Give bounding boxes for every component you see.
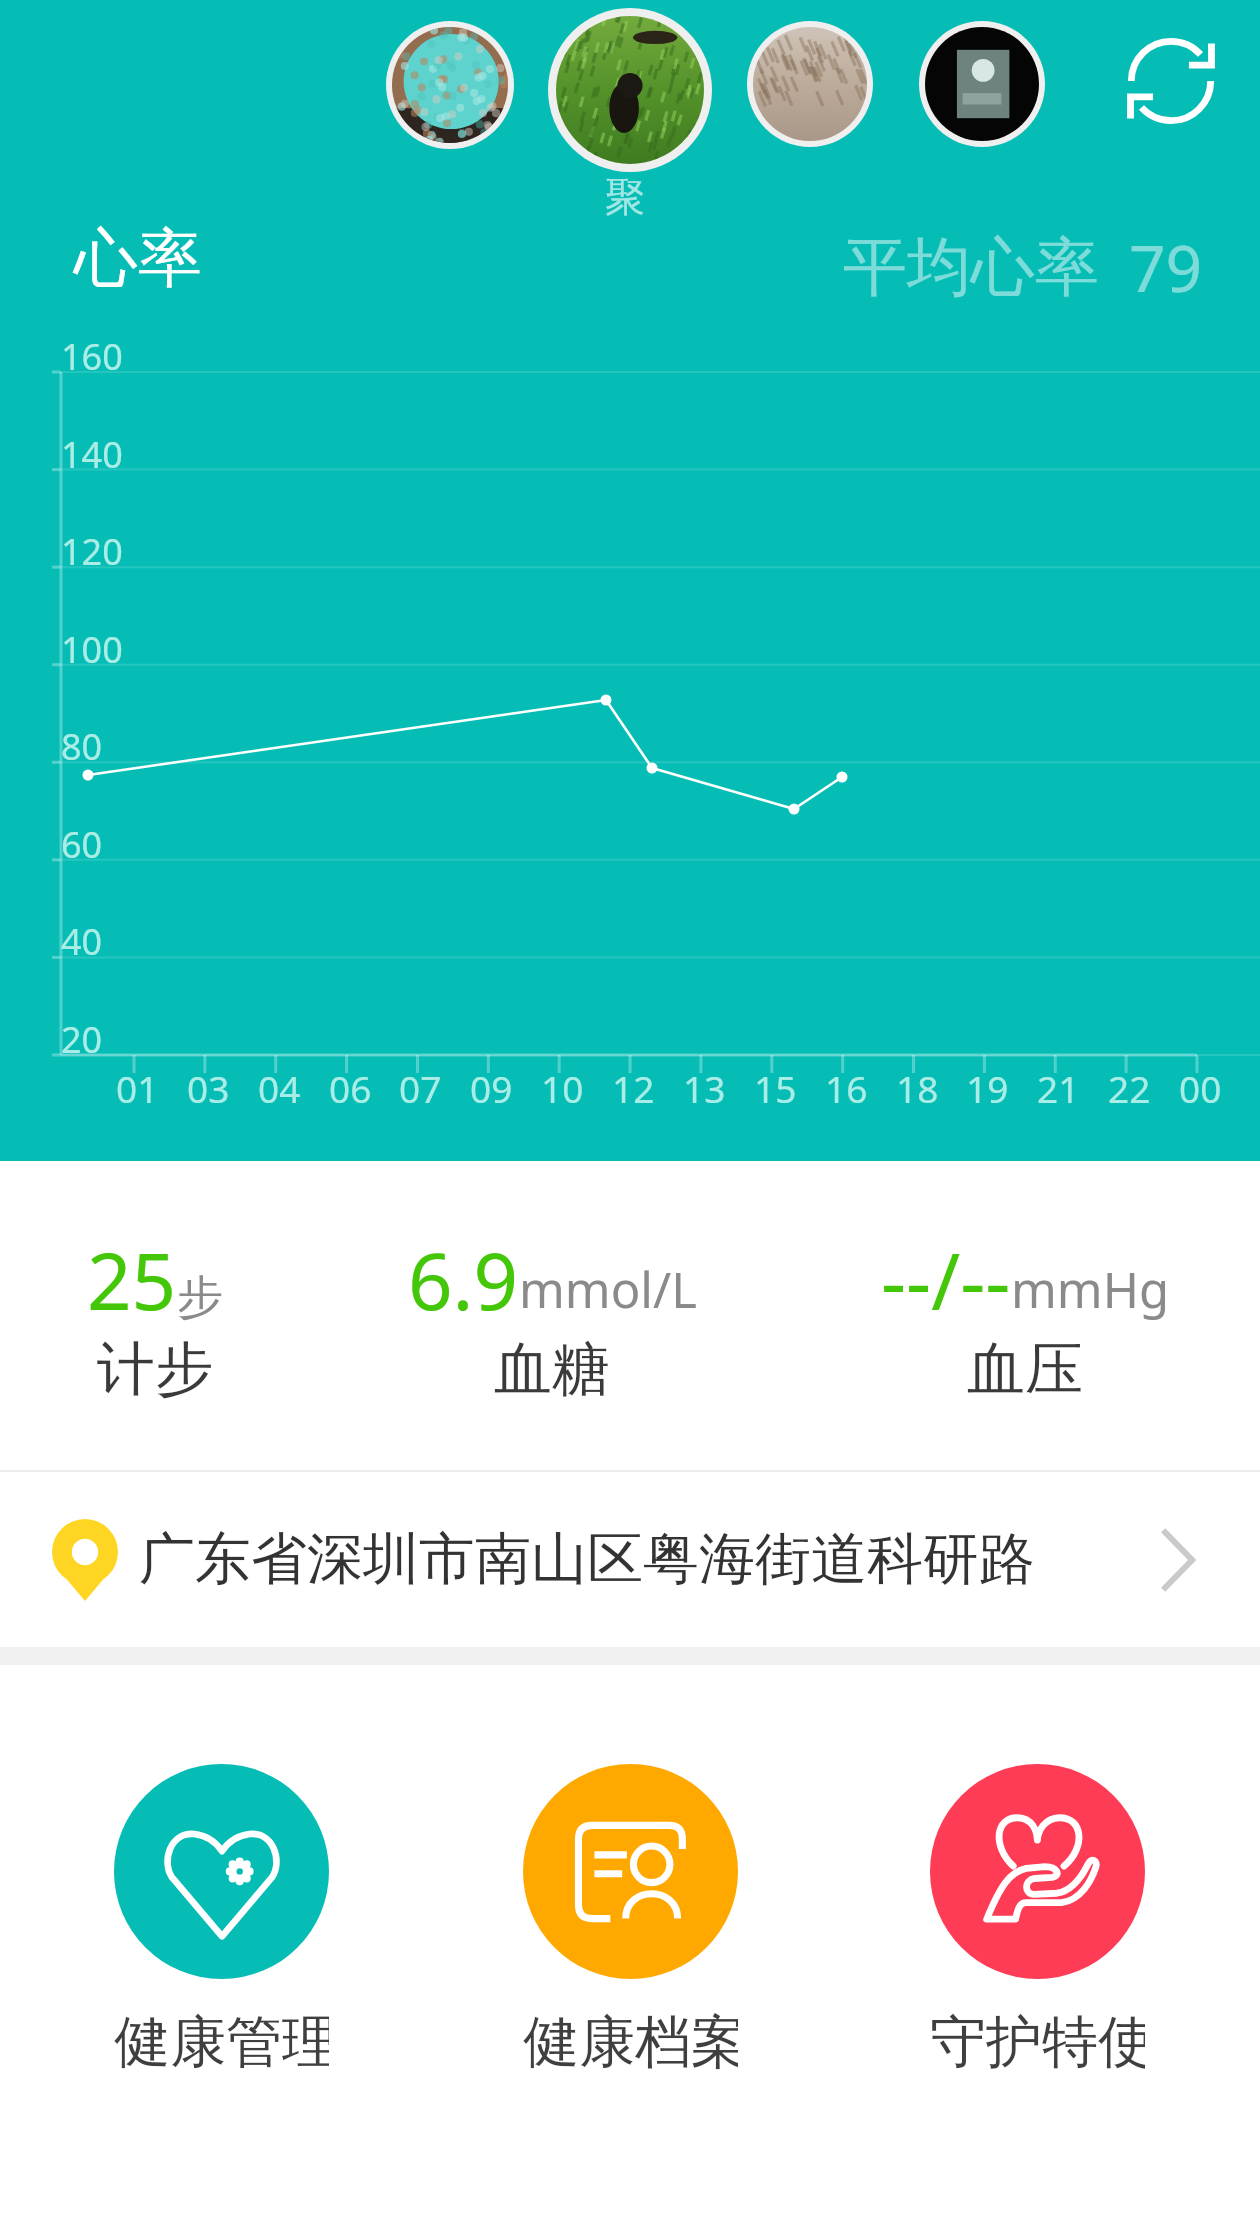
staticText: 79: [1129, 224, 1203, 311]
staticText: 守护特使: [930, 2007, 1145, 2078]
staticText: 00: [1179, 1063, 1222, 1113]
staticText: 6.9: [408, 1227, 519, 1333]
staticText: 07: [399, 1063, 442, 1113]
staticText: 18: [896, 1063, 939, 1113]
staticText: 10: [541, 1063, 584, 1113]
button[interactable]: 健康档案: [523, 1764, 738, 2078]
staticText: 血压: [967, 1333, 1083, 1406]
staticText: 20: [61, 1015, 103, 1064]
button[interactable]: Contact 2: [747, 21, 873, 147]
staticText: 100: [61, 625, 123, 674]
staticText: 25: [87, 1227, 177, 1333]
button[interactable]: Contact 3: [919, 21, 1045, 147]
staticText: 心率: [74, 218, 202, 299]
staticText: 60: [61, 820, 103, 869]
button[interactable]: Contact 1: [386, 21, 514, 149]
other: Open location: [1146, 1528, 1210, 1592]
staticText: 平均心率: [843, 227, 1099, 308]
button[interactable]: --/--: [875, 1227, 1175, 1406]
staticText: 04: [258, 1063, 301, 1113]
button[interactable]: 25: [5, 1227, 305, 1406]
staticText: 13: [683, 1063, 726, 1113]
button[interactable]: 守护特使: [930, 1764, 1145, 2078]
staticText: mmol/L: [519, 1256, 697, 1323]
staticText: 120: [61, 527, 123, 576]
staticText: 160: [61, 332, 123, 381]
staticText: 步: [177, 1269, 223, 1327]
staticText: 广东省深圳市南山区粤海街道科研路: [139, 1524, 1035, 1595]
staticText: 01: [116, 1063, 159, 1113]
staticText: 计步: [97, 1333, 213, 1406]
staticText: 15: [754, 1063, 797, 1113]
staticText: 健康档案: [523, 2007, 738, 2078]
staticText: 03: [187, 1063, 230, 1113]
staticText: --/--: [881, 1227, 1011, 1333]
staticText: 06: [329, 1063, 372, 1113]
button[interactable]: 6.9: [402, 1227, 702, 1406]
staticText: 80: [61, 722, 103, 771]
staticText: 22: [1108, 1063, 1151, 1113]
staticText: 140: [61, 430, 123, 479]
staticText: 21: [1037, 1063, 1080, 1113]
staticText: 12: [612, 1063, 655, 1113]
staticText: mmHg: [1011, 1256, 1170, 1323]
staticText: 血糖: [494, 1333, 610, 1406]
staticText: 19: [966, 1063, 1009, 1113]
staticText: 健康管理: [114, 2007, 329, 2078]
button[interactable]: Refresh: [1115, 25, 1227, 137]
staticText: 09: [470, 1063, 513, 1113]
button[interactable]: Group: [548, 8, 712, 172]
staticText: 16: [825, 1063, 868, 1113]
staticText: 聚: [605, 172, 645, 222]
staticText: 40: [61, 917, 103, 966]
button[interactable]: 广东省深圳市南山区粤海街道科研路: [0, 1472, 1260, 1647]
button[interactable]: 健康管理: [114, 1764, 329, 2078]
